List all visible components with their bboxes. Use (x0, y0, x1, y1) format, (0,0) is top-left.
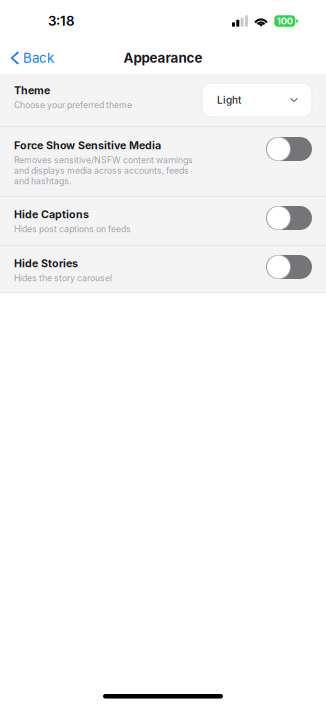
button[interactable]: Hide Stories (266, 255, 312, 279)
staticText: Hide Stories (14, 257, 78, 270)
staticText: Choose your preferred theme (14, 100, 132, 110)
button[interactable]: Light (202, 83, 312, 117)
staticText: Hide Captions (14, 208, 89, 221)
button[interactable]: Back (0, 44, 64, 72)
button[interactable]: Hide Captions (266, 206, 312, 230)
staticText: 3:18 (48, 13, 75, 29)
staticText: Hides the story carousel (14, 273, 112, 283)
button[interactable]: Force Show Sensitive Media (266, 137, 312, 161)
staticText: Theme (14, 84, 50, 97)
staticText: Appearance (123, 50, 202, 66)
staticText: Back (23, 50, 54, 66)
staticText: 100 (277, 15, 293, 27)
staticText: Light (217, 94, 241, 106)
staticText: Removes sensitive/NSFW content warnings … (14, 155, 193, 186)
staticText: Force Show Sensitive Media (14, 139, 161, 152)
staticText: Hides post captions on feeds (14, 224, 131, 234)
